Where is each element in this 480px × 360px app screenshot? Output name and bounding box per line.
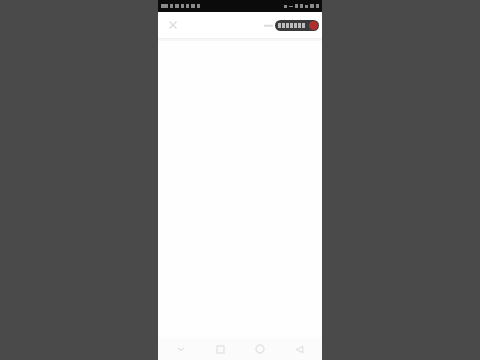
button[interactable]: Notification	[275, 20, 319, 31]
button[interactable]: Home	[243, 338, 277, 360]
button[interactable]: Close	[163, 15, 183, 35]
button[interactable]: Recents	[203, 338, 237, 360]
button[interactable]: Back	[282, 338, 316, 360]
